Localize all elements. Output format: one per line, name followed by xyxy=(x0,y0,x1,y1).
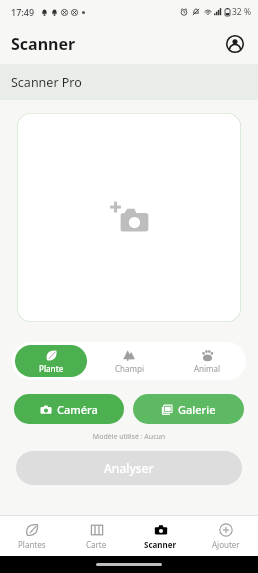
button[interactable]: Galerie xyxy=(133,394,244,424)
staticText: Ajouter xyxy=(212,539,240,550)
button[interactable]: Plante xyxy=(15,345,87,377)
button[interactable]: Caméra xyxy=(14,394,124,424)
staticText: Caméra xyxy=(57,402,98,417)
button[interactable]: Account xyxy=(220,29,250,59)
staticText: Scanner xyxy=(11,33,76,55)
button[interactable]: Ajouter xyxy=(193,516,258,556)
button[interactable]: Animal xyxy=(171,345,243,377)
staticText: Analyser xyxy=(104,460,154,476)
staticText: 32 % xyxy=(232,6,251,18)
staticText: Plante xyxy=(39,363,64,374)
staticText: Champi xyxy=(115,363,144,374)
staticText: 17:49 xyxy=(11,6,35,18)
staticText: Plantes xyxy=(18,539,46,550)
staticText: Scanner Pro xyxy=(11,74,82,91)
staticText: Modèle utilisé : Aucun xyxy=(0,432,258,442)
button[interactable]: Champi xyxy=(93,345,165,377)
staticText: Scanner xyxy=(144,539,177,550)
staticText: Carte xyxy=(86,539,107,550)
button[interactable]: Scanner xyxy=(128,516,193,556)
button[interactable]: Ajouter une photo xyxy=(17,113,241,322)
staticText: Galerie xyxy=(178,402,216,417)
staticText: Animal xyxy=(194,363,221,374)
button[interactable]: Analyser xyxy=(16,451,242,485)
button[interactable]: Carte xyxy=(64,516,128,556)
button[interactable]: Plantes xyxy=(0,516,64,556)
